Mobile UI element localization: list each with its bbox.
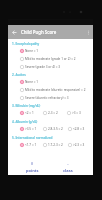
staticText: <2.8 = 3 [73, 127, 85, 131]
staticText: >3.5 = 1 [25, 127, 37, 131]
staticText: 1. Encephalopathy [12, 42, 40, 46]
staticText: Mild to moderate (grade 1 or 2) = 2 [25, 57, 76, 61]
button[interactable]: 2.8-3.5 = 2 [43, 125, 63, 133]
staticText: class [63, 168, 73, 173]
staticText: 8 [31, 161, 34, 166]
staticText: points [26, 168, 39, 173]
button[interactable]: 2-3 = 2 [43, 109, 58, 117]
button[interactable]: >3.5 = 1 [20, 125, 37, 133]
button[interactable]: <2.8 = 3 [68, 125, 85, 133]
staticText: 3. Bilirubin (mg/dL) [12, 104, 41, 108]
staticText: None = 1 [25, 49, 39, 53]
button[interactable]: More options [83, 27, 93, 37]
button[interactable]: Back [8, 26, 21, 39]
staticText: Severe (grade 3 or 4) = 3 [25, 65, 61, 69]
staticText: None = 1 [25, 80, 39, 84]
button[interactable]: Mild to moderate (diuretic responsive) =… [20, 86, 86, 94]
button[interactable]: >3 = 3 [67, 109, 81, 117]
staticText: <1.7 = 1 [25, 143, 37, 147]
staticText: <2 = 1 [25, 111, 34, 115]
button[interactable]: 1.7-2.3 = 2 [43, 141, 63, 149]
staticText: 1.7-2.3 = 2 [48, 143, 63, 147]
button[interactable]: <1.7 = 1 [20, 141, 37, 149]
staticText: Severe (diuretic refractory) = 3 [25, 96, 69, 100]
staticText: 2.8-3.5 = 2 [48, 127, 63, 131]
staticText: >3 = 3 [72, 111, 81, 115]
button[interactable]: None = 1 [20, 47, 39, 55]
button[interactable]: <2 = 1 [20, 109, 34, 117]
button[interactable]: >2.3 = 3 [68, 141, 85, 149]
staticText: 5. International normalized [12, 136, 53, 140]
staticText: 2. Ascites [12, 73, 26, 77]
button[interactable]: Mild to moderate (grade 1 or 2) = 2 [20, 55, 76, 63]
staticText: 4. Albumin (g/dL) [12, 120, 38, 124]
staticText: >2.3 = 3 [73, 143, 85, 147]
button[interactable]: Severe (grade 3 or 4) = 3 [20, 63, 61, 71]
staticText: – [67, 161, 69, 166]
staticText: 2-3 = 2 [48, 111, 58, 115]
staticText: Mild to moderate (diuretic responsive) =… [25, 88, 86, 92]
button[interactable]: Severe (diuretic refractory) = 3 [20, 94, 69, 102]
button[interactable]: None = 1 [20, 78, 39, 86]
staticText: Child Pugh Score [21, 29, 83, 35]
